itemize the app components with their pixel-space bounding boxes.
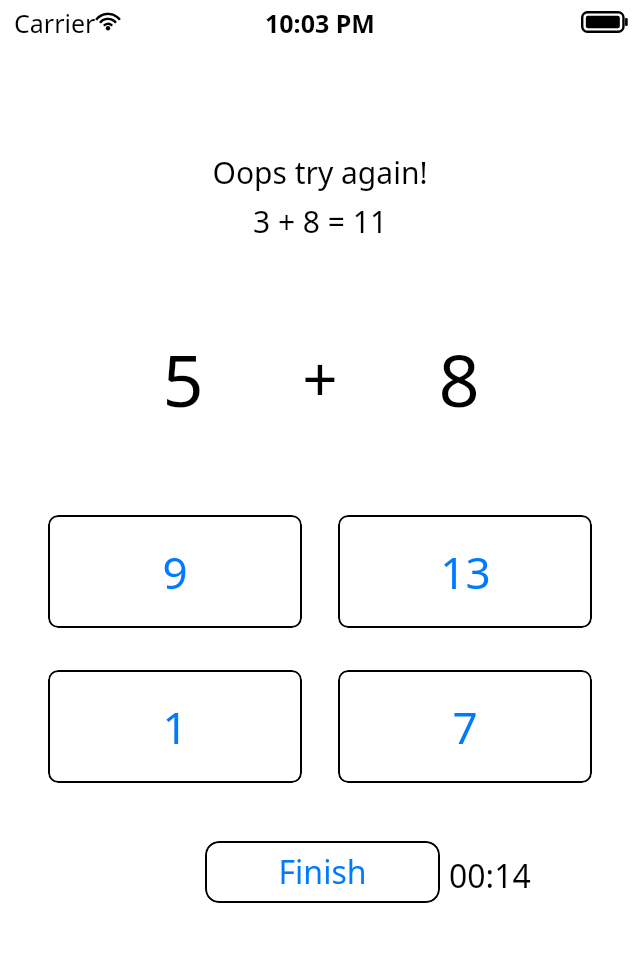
staticText: 13 — [440, 542, 491, 602]
button[interactable]: 13 — [338, 515, 592, 628]
staticText: Oops try again! — [0, 152, 640, 193]
other: Battery full — [581, 11, 629, 33]
staticText: 00:14 — [449, 854, 531, 898]
staticText: + — [302, 336, 338, 420]
staticText: Finish — [278, 850, 367, 894]
staticText: 8 — [438, 330, 480, 426]
staticText: 3 + 8 = 11 — [0, 201, 640, 242]
staticText: 10:03 PM — [265, 6, 375, 40]
staticText: 5 — [162, 330, 204, 426]
button[interactable]: 9 — [48, 515, 302, 628]
staticText: 1 — [162, 697, 188, 757]
button[interactable]: Finish — [205, 841, 440, 903]
button[interactable]: 1 — [48, 670, 302, 783]
staticText: 7 — [452, 697, 478, 757]
staticText: Carrier — [14, 6, 96, 40]
other: Wi-Fi signal — [95, 11, 121, 31]
staticText: 9 — [162, 542, 188, 602]
button[interactable]: 7 — [338, 670, 592, 783]
